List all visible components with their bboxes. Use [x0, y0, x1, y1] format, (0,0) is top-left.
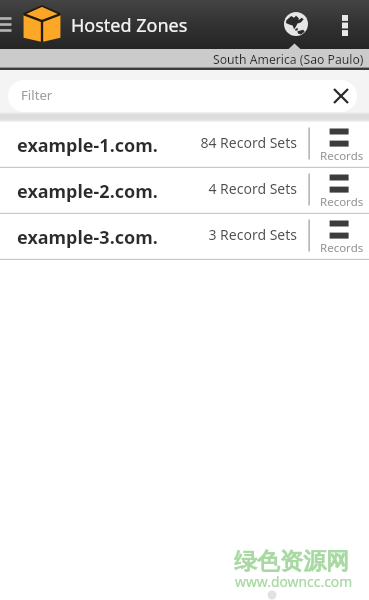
- button[interactable]: example-1.com.: [0, 122, 369, 168]
- staticText: example-1.com.: [17, 133, 158, 158]
- staticText: Records: [320, 194, 364, 210]
- staticText: www.downcc.com: [235, 572, 353, 591]
- staticText: 3 Record Sets: [208, 225, 297, 244]
- staticText: 绿色资源网: [234, 547, 349, 576]
- staticText: Hosted Zones: [71, 13, 188, 38]
- staticText: Records: [320, 240, 364, 256]
- button[interactable]: Open navigation menu: [0, 0, 18, 49]
- staticText: 4 Record Sets: [208, 179, 297, 198]
- staticText: Filter: [21, 86, 53, 104]
- button[interactable]: example-3.com.: [0, 214, 369, 260]
- staticText: Records: [320, 148, 364, 164]
- staticText: South America (Sao Paulo): [213, 51, 364, 68]
- staticText: 84 Record Sets: [200, 133, 297, 152]
- button[interactable]: example-2.com.: [0, 168, 369, 214]
- button[interactable]: More options: [326, 3, 363, 47]
- staticText: example-3.com.: [17, 225, 158, 250]
- button[interactable]: Select region: [276, 4, 316, 44]
- button[interactable]: Clear filter: [325, 80, 357, 112]
- staticText: example-2.com.: [17, 179, 158, 204]
- button[interactable]: Filter: [8, 80, 357, 112]
